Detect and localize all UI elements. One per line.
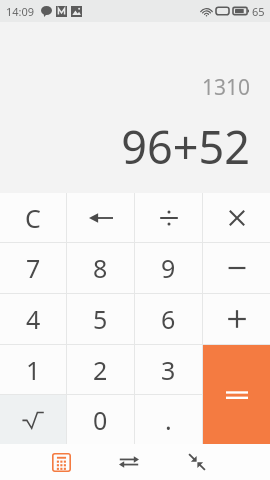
staticText: 6 — [161, 302, 176, 336]
button[interactable]: 2 — [67, 345, 134, 394]
staticText: 4 — [26, 302, 41, 336]
staticText: . — [165, 403, 172, 437]
button[interactable]: Calculator — [44, 445, 78, 479]
button[interactable]: 0 — [67, 395, 134, 444]
staticText: C — [25, 201, 41, 235]
staticText: 3 — [161, 353, 176, 387]
button[interactable]: 9 — [135, 243, 202, 293]
button[interactable]: C — [0, 193, 66, 242]
button[interactable]: Converter — [112, 445, 146, 479]
staticText: 14:09 — [6, 4, 35, 19]
staticText: 65 — [252, 4, 265, 19]
button[interactable]: 3 — [135, 345, 202, 394]
button[interactable]: Equals — [203, 345, 270, 444]
button[interactable]: Backspace — [67, 193, 134, 242]
button[interactable]: 6 — [135, 294, 202, 344]
button[interactable]: Multiply — [203, 193, 270, 242]
button[interactable]: Divide — [135, 193, 202, 242]
staticText: 2 — [93, 353, 108, 387]
button[interactable]: Plus — [203, 294, 270, 344]
staticText: 8 — [93, 251, 108, 285]
button[interactable]: 8 — [67, 243, 134, 293]
button[interactable]: . — [135, 395, 202, 444]
button[interactable]: Collapse — [180, 445, 214, 479]
staticText: 1 — [26, 353, 41, 387]
staticText: 9 — [161, 251, 176, 285]
other: Equals — [226, 388, 248, 402]
button[interactable]: Square root — [0, 395, 66, 444]
staticText: 7 — [26, 251, 41, 285]
staticText: 96+52 — [121, 116, 250, 177]
button[interactable]: 7 — [0, 243, 66, 293]
staticText: 1310 — [201, 73, 250, 102]
button[interactable]: 5 — [67, 294, 134, 344]
staticText: 0 — [93, 403, 108, 437]
button[interactable]: 1 — [0, 345, 66, 394]
button[interactable]: 4 — [0, 294, 66, 344]
staticText: 5 — [93, 302, 108, 336]
button[interactable]: Minus — [203, 243, 270, 293]
